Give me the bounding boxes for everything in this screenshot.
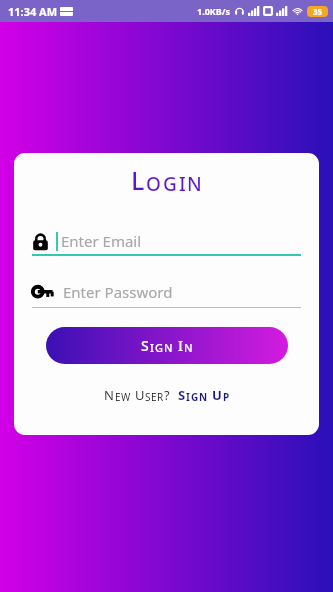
- staticText: I: [178, 336, 184, 355]
- staticText: 11:34 AM: [8, 4, 58, 19]
- staticText: S: [141, 336, 150, 355]
- staticText: W: [121, 390, 131, 404]
- staticText: Enter Email: [61, 231, 142, 251]
- staticText: ?: [164, 386, 171, 404]
- staticText: G: [155, 340, 164, 355]
- staticText: I: [186, 390, 191, 404]
- staticText: U: [212, 386, 223, 404]
- staticText: N: [164, 340, 174, 355]
- staticText: G: [163, 171, 179, 197]
- staticText: I: [179, 171, 187, 197]
- staticText: 1.0KB/s: [197, 5, 231, 17]
- staticText: Enter Password: [63, 282, 173, 302]
- staticText: N: [199, 390, 208, 404]
- button[interactable]: S: [46, 327, 288, 364]
- button[interactable]: Enter Password: [32, 282, 301, 308]
- staticText: L: [131, 163, 146, 197]
- button[interactable]: S: [178, 386, 230, 404]
- staticText: P: [223, 390, 230, 404]
- staticText: R: [157, 390, 164, 404]
- button[interactable]: Enter Email: [32, 231, 301, 256]
- staticText: N: [187, 171, 203, 197]
- staticText: E: [151, 390, 157, 404]
- staticText: I: [150, 340, 155, 355]
- staticText: G: [191, 390, 199, 404]
- staticText: O: [146, 171, 163, 197]
- staticText: 35: [313, 6, 323, 17]
- staticText: N: [184, 340, 194, 355]
- staticText: S: [145, 390, 151, 404]
- staticText: N: [104, 386, 115, 404]
- staticText: E: [115, 390, 121, 404]
- staticText: S: [178, 386, 186, 404]
- staticText: U: [135, 386, 145, 404]
